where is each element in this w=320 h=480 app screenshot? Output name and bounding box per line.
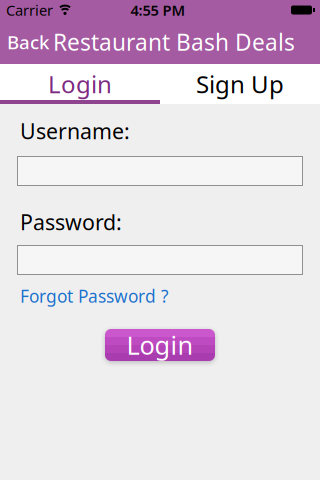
staticText: Carrier — [6, 0, 53, 20]
button[interactable]: Login — [105, 329, 215, 361]
button[interactable]: Back — [0, 30, 49, 54]
staticText: Sign Up — [196, 68, 284, 100]
button[interactable]: Sign Up — [160, 64, 320, 100]
button[interactable] — [17, 156, 303, 186]
button[interactable]: Login — [0, 64, 160, 100]
staticText: Password: — [20, 208, 122, 236]
staticText: Forgot Password ? — [20, 284, 169, 307]
button[interactable]: Forgot Password ? — [0, 275, 169, 308]
staticText: Login — [126, 328, 193, 362]
button[interactable] — [17, 245, 303, 275]
staticText: Back — [7, 30, 49, 54]
staticText: 4:55 PM — [130, 0, 185, 20]
staticText: Username: — [20, 117, 130, 145]
staticText: Restaurant Bash Deals — [53, 27, 295, 57]
staticText: Login — [48, 68, 112, 100]
